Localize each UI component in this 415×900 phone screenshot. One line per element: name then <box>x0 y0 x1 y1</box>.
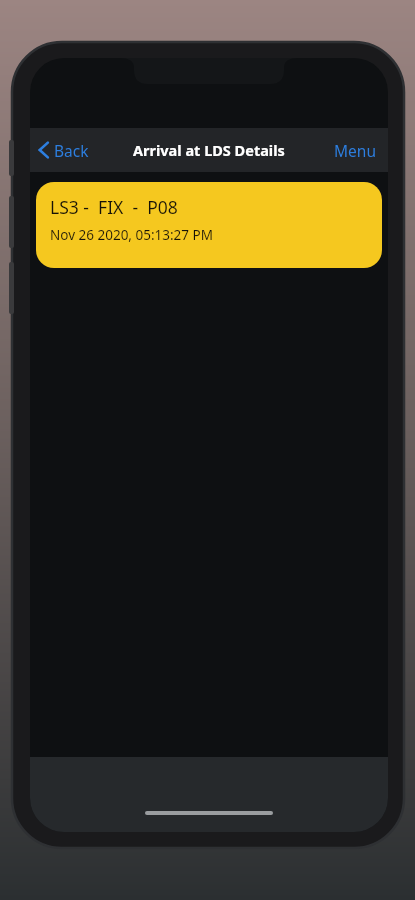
other: Side button <box>9 196 14 248</box>
staticText: Arrival at LDS Details <box>133 140 285 160</box>
staticText: Menu <box>334 140 376 161</box>
staticText: Nov 26 2020, 05:13:27 PM <box>50 226 213 244</box>
staticText: LS3 - FIX - P08 <box>50 195 178 219</box>
other: Side button <box>9 140 14 176</box>
button[interactable]: LS3 - FIX - P08 <box>36 182 382 268</box>
button[interactable]: Menu <box>322 128 388 172</box>
staticText: Back <box>54 140 89 161</box>
other: Side button <box>9 262 14 314</box>
button[interactable]: Back <box>30 128 99 172</box>
